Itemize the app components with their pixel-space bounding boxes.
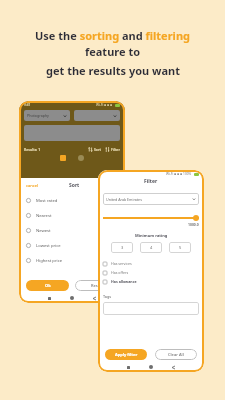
staticText: Apply filter: [115, 352, 138, 357]
staticText: Wi-Fi ▪ ▪ ▪ 100%: [166, 172, 192, 176]
other: Back: [93, 297, 96, 300]
button[interactable]: Newest: [19, 223, 125, 238]
other: Expand country: [192, 197, 196, 201]
staticText: Lowest price: [36, 243, 61, 249]
other: Filter: [105, 147, 110, 152]
staticText: Highest price: [36, 258, 63, 264]
staticText: Ok: [45, 283, 51, 288]
button[interactable]: [103, 302, 199, 315]
staticText: Clear All: [168, 352, 184, 357]
button[interactable]: Most rated: [19, 193, 125, 208]
staticText: Filter: [111, 147, 120, 152]
button[interactable]: Has allowance: [103, 277, 199, 286]
button[interactable]: Expand: [77, 110, 117, 121]
button[interactable]: cancel: [25, 182, 40, 189]
staticText: United Arab Emirates: [106, 197, 142, 202]
other: Expand: [63, 114, 67, 118]
button[interactable]: Highest price: [19, 253, 125, 268]
other: Back: [172, 366, 175, 369]
button[interactable]: 3: [111, 242, 133, 253]
button[interactable]: United Arab Emirates: [106, 193, 196, 205]
staticText: 1000.0: [188, 222, 199, 227]
staticText: Most rated: [36, 198, 58, 204]
staticText: Sort: [94, 147, 101, 152]
staticText: Wi-Fi ▪ ▪ ▪: [96, 103, 113, 107]
other: Expand: [113, 114, 117, 118]
button[interactable]: Lowest price: [19, 238, 125, 253]
button[interactable]: Ok: [26, 280, 69, 291]
button[interactable]: Has offers: [103, 268, 199, 277]
button[interactable]: Photography: [27, 110, 67, 121]
other: Sort: [88, 147, 93, 152]
staticText: get the results you want: [46, 63, 180, 78]
button[interactable]: Nearest: [19, 208, 125, 223]
staticText: Photography: [27, 113, 49, 118]
staticText: Filter: [144, 178, 158, 185]
staticText: Has offers: [111, 270, 129, 275]
staticText: Has services: [111, 261, 132, 266]
button[interactable]: 5: [169, 242, 191, 253]
button[interactable]: Reset: [75, 280, 118, 291]
staticText: Nearest: [36, 213, 52, 219]
staticText: 9:41: [24, 103, 31, 107]
staticText: Tags: [103, 294, 112, 299]
staticText: Newest: [36, 228, 51, 234]
staticText: Use the sorting and filtering feature to: [14, 28, 211, 59]
staticText: 3: [121, 245, 124, 250]
staticText: 4: [150, 245, 153, 250]
button[interactable]: Clear All: [155, 349, 197, 360]
staticText: Sort: [69, 182, 80, 189]
staticText: cancel: [26, 183, 39, 188]
staticText: 5: [179, 245, 182, 250]
staticText: Minimum rating: [135, 233, 168, 238]
staticText: Results: 1: [24, 147, 41, 152]
staticText: Has allowance: [111, 279, 137, 284]
button[interactable]: Price slider: [193, 215, 199, 221]
button[interactable]: Has services: [103, 259, 199, 268]
button[interactable]: 4: [140, 242, 162, 253]
button[interactable]: Apply filter: [105, 349, 147, 360]
staticText: Reset: [91, 283, 102, 288]
